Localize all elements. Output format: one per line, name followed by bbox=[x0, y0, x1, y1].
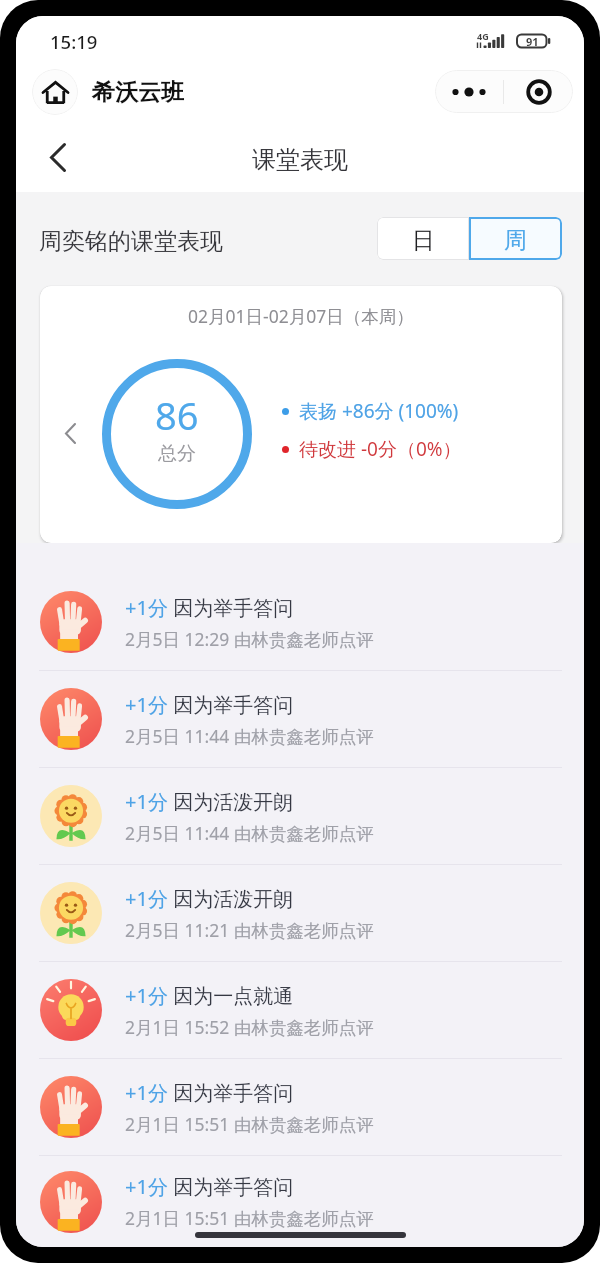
staticText: 15:19 bbox=[50, 29, 98, 54]
staticText: 待改进 -0分（0%） bbox=[299, 436, 462, 462]
staticText: 周 bbox=[504, 226, 527, 255]
staticText: 2月5日 11:44 由林贵鑫老师点评 bbox=[125, 724, 374, 748]
staticText: 86 bbox=[155, 389, 199, 441]
staticText: +1分 bbox=[125, 1173, 168, 1200]
button[interactable]: +1分 bbox=[16, 1059, 584, 1155]
button[interactable]: +1分 bbox=[16, 865, 584, 961]
staticText: 日 bbox=[412, 226, 435, 255]
button[interactable]: +1分 bbox=[16, 962, 584, 1058]
staticText: +1分 bbox=[125, 691, 168, 718]
staticText: 因为一点就通 bbox=[168, 982, 294, 1009]
staticText: 因为活泼开朗 bbox=[168, 788, 294, 815]
button[interactable]: Home bbox=[32, 69, 78, 115]
staticText: 2月1日 15:51 由林贵鑫老师点评 bbox=[125, 1112, 374, 1136]
staticText: 02月01日-02月07日（本周） bbox=[188, 304, 414, 328]
staticText: 周奕铭的课堂表现 bbox=[39, 227, 223, 256]
staticText: 因为举手答问 bbox=[168, 594, 294, 621]
staticText: 表扬 +86分 (100%) bbox=[299, 398, 459, 424]
staticText: 2月1日 15:52 由林贵鑫老师点评 bbox=[125, 1015, 374, 1039]
button[interactable]: 日 bbox=[377, 217, 469, 260]
button[interactable]: Back bbox=[38, 137, 78, 177]
button[interactable]: +1分 bbox=[16, 1156, 584, 1247]
staticText: 因为举手答问 bbox=[168, 691, 294, 718]
staticText: 91 bbox=[526, 34, 539, 48]
staticText: 因为举手答问 bbox=[168, 1173, 294, 1200]
button[interactable]: 周 bbox=[469, 217, 562, 260]
staticText: +1分 bbox=[125, 594, 168, 621]
staticText: 4G bbox=[477, 30, 489, 42]
staticText: 2月5日 11:44 由林贵鑫老师点评 bbox=[125, 821, 374, 845]
button[interactable]: +1分 bbox=[16, 574, 584, 670]
staticText: 因为活泼开朗 bbox=[168, 885, 294, 912]
button[interactable]: More options bbox=[435, 70, 503, 113]
staticText: 因为举手答问 bbox=[168, 1079, 294, 1106]
staticText: 2月1日 15:51 由林贵鑫老师点评 bbox=[125, 1206, 374, 1230]
staticText: 2月5日 11:21 由林贵鑫老师点评 bbox=[125, 918, 374, 942]
button[interactable]: +1分 bbox=[16, 768, 584, 864]
button[interactable]: Close mini program bbox=[504, 70, 573, 113]
staticText: +1分 bbox=[125, 788, 168, 815]
button[interactable]: Previous week bbox=[51, 414, 89, 452]
button[interactable]: +1分 bbox=[16, 671, 584, 767]
staticText: +1分 bbox=[125, 982, 168, 1009]
staticText: 希沃云班 bbox=[92, 78, 184, 107]
staticText: 课堂表现 bbox=[252, 145, 348, 175]
staticText: 2月5日 12:29 由林贵鑫老师点评 bbox=[125, 627, 374, 651]
staticText: +1分 bbox=[125, 1079, 168, 1106]
staticText: +1分 bbox=[125, 885, 168, 912]
staticText: 总分 bbox=[158, 442, 196, 466]
